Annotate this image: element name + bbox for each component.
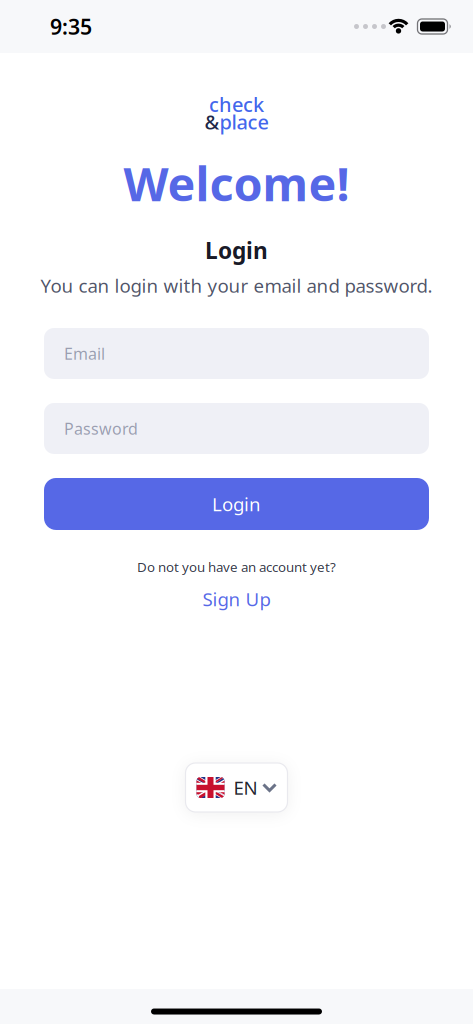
staticText: Sign Up bbox=[202, 587, 270, 611]
button[interactable]: Password bbox=[44, 403, 429, 454]
staticText: You can login with your email and passwo… bbox=[40, 273, 432, 298]
staticText: Email bbox=[64, 343, 105, 364]
staticText: Password bbox=[64, 418, 138, 439]
staticText: EN bbox=[233, 775, 257, 800]
button[interactable]: Sign Up bbox=[202, 587, 270, 611]
staticText: Welcome! bbox=[123, 152, 349, 214]
button[interactable]: Email bbox=[44, 328, 429, 379]
staticText: Login bbox=[212, 492, 261, 516]
staticText: check bbox=[209, 91, 264, 118]
button[interactable]: Login bbox=[44, 478, 429, 530]
staticText: 9:35 bbox=[50, 12, 92, 41]
staticText: Login bbox=[205, 235, 268, 265]
staticText: & bbox=[204, 109, 219, 135]
staticText: place bbox=[219, 109, 268, 135]
staticText: Do not you have an account yet? bbox=[137, 558, 336, 576]
button[interactable]: EN bbox=[185, 763, 287, 812]
